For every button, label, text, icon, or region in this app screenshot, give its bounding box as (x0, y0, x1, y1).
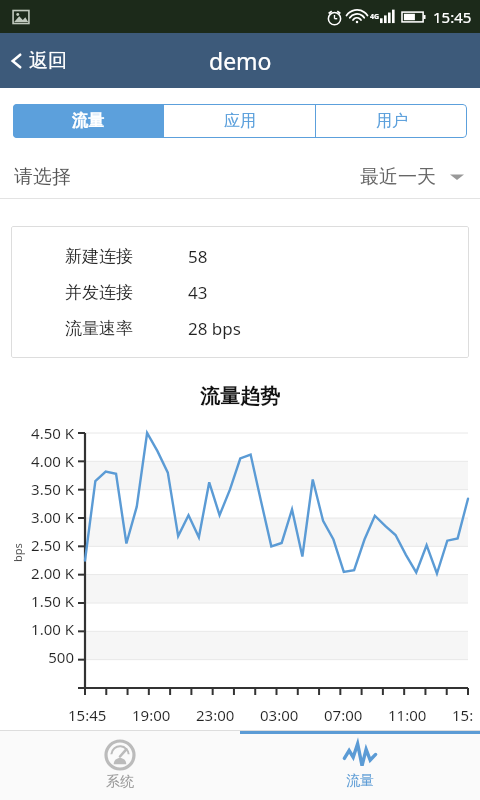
staticText: 07:00 (324, 705, 363, 722)
staticText: 3.50 K (0, 479, 74, 499)
staticText: 15:45 (433, 7, 472, 27)
staticText: 返回 (29, 49, 67, 73)
staticText: 1.00 K (0, 619, 74, 639)
button[interactable]: 用户 (316, 104, 467, 138)
staticText: 请选择 (14, 165, 71, 189)
button[interactable]: 流量 (240, 731, 480, 800)
staticText: 2.50 K (0, 535, 74, 555)
staticText: 4.50 K (0, 423, 74, 443)
staticText: 流量 (72, 111, 104, 131)
staticText: 03:00 (260, 705, 299, 722)
button[interactable]: 返回 (0, 33, 77, 88)
staticText: 15:45 (68, 705, 107, 722)
button[interactable]: 应用 (164, 104, 315, 138)
staticText: 新建连接 (65, 246, 133, 267)
staticText: 流量趋势 (200, 384, 280, 409)
staticText: 4G (370, 12, 380, 22)
staticText: 58 (188, 245, 208, 268)
button[interactable]: 流量 (13, 104, 163, 138)
staticText: 19:00 (132, 705, 171, 722)
staticText: 并发连接 (65, 282, 133, 303)
staticText: 1.50 K (0, 591, 74, 611)
staticText: 最近一天 (360, 165, 436, 189)
staticText: 28 bps (188, 317, 241, 340)
staticText: 11:00 (388, 705, 427, 722)
staticText: 应用 (224, 111, 256, 131)
staticText: 500 (0, 647, 74, 667)
staticText: 流量 (346, 772, 374, 790)
staticText: 4.00 K (0, 451, 74, 471)
staticText: 15:00 (452, 705, 480, 722)
button[interactable]: 系统 (0, 731, 240, 800)
staticText: demo (209, 45, 272, 76)
button[interactable]: 最近一天 (358, 161, 466, 193)
staticText: 流量速率 (65, 318, 133, 339)
staticText: bps (10, 543, 25, 562)
staticText: 23:00 (196, 705, 235, 722)
staticText: 用户 (376, 111, 408, 131)
staticText: 系统 (106, 773, 134, 791)
staticText: 43 (188, 281, 208, 304)
staticText: 3.00 K (0, 507, 74, 527)
staticText: 2.00 K (0, 563, 74, 583)
